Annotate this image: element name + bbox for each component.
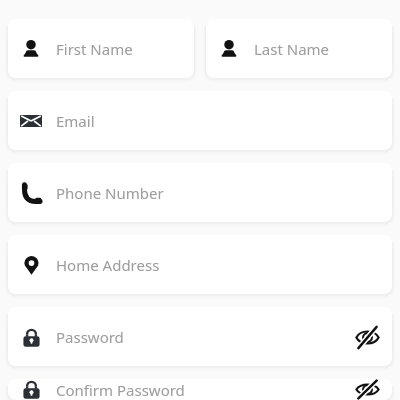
staticText: Last Name [254, 39, 330, 59]
button[interactable]: Last Name [206, 19, 392, 78]
button[interactable]: Phone Number [8, 163, 392, 222]
button[interactable]: Password [8, 307, 392, 366]
staticText: Password [56, 327, 124, 347]
button[interactable]: First Name [8, 19, 194, 78]
staticText: Email [56, 111, 95, 131]
button[interactable]: Confirm Password [8, 379, 392, 400]
staticText: Confirm Password [56, 380, 185, 400]
staticText: Home Address [56, 255, 160, 275]
staticText: First Name [56, 39, 133, 59]
button[interactable]: Email [8, 91, 392, 150]
button[interactable]: Hide password [352, 379, 382, 400]
button[interactable]: Home Address [8, 235, 392, 294]
button[interactable]: Hide password [352, 322, 382, 352]
staticText: Phone Number [56, 183, 164, 203]
